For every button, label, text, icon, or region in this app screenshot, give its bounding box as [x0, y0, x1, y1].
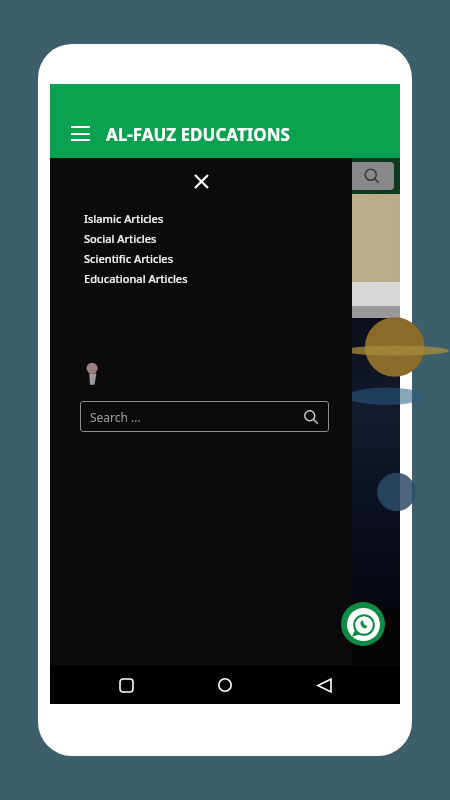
button[interactable]: Back	[301, 666, 347, 704]
button[interactable]: Chat on WhatsApp	[341, 602, 385, 646]
button[interactable]: Islamic Articles	[84, 208, 324, 228]
staticText: Scientific Articles	[84, 251, 174, 266]
staticText: Social Articles	[84, 231, 157, 246]
button[interactable]: Scientific Articles	[84, 248, 324, 268]
button[interactable]: Recent apps	[103, 666, 149, 704]
staticText: AL-FAUZ EDUCATIONS	[106, 123, 290, 146]
button[interactable]: Home	[202, 666, 248, 704]
staticText: Search ...	[90, 409, 141, 425]
button[interactable]: Open navigation menu	[62, 116, 98, 152]
button[interactable]: Close menu	[184, 164, 218, 198]
button[interactable]: Search ...	[80, 401, 329, 432]
staticText: Islamic Articles	[84, 211, 164, 226]
button[interactable]	[50, 318, 400, 608]
button[interactable]: Search	[350, 162, 394, 190]
button[interactable]: Educational Articles	[84, 268, 324, 288]
button[interactable]	[50, 194, 400, 282]
button[interactable]: Social Articles	[84, 228, 324, 248]
staticText: Educational Articles	[84, 271, 188, 286]
other: Submit search	[303, 409, 319, 425]
button[interactable]: Profile	[82, 362, 106, 386]
